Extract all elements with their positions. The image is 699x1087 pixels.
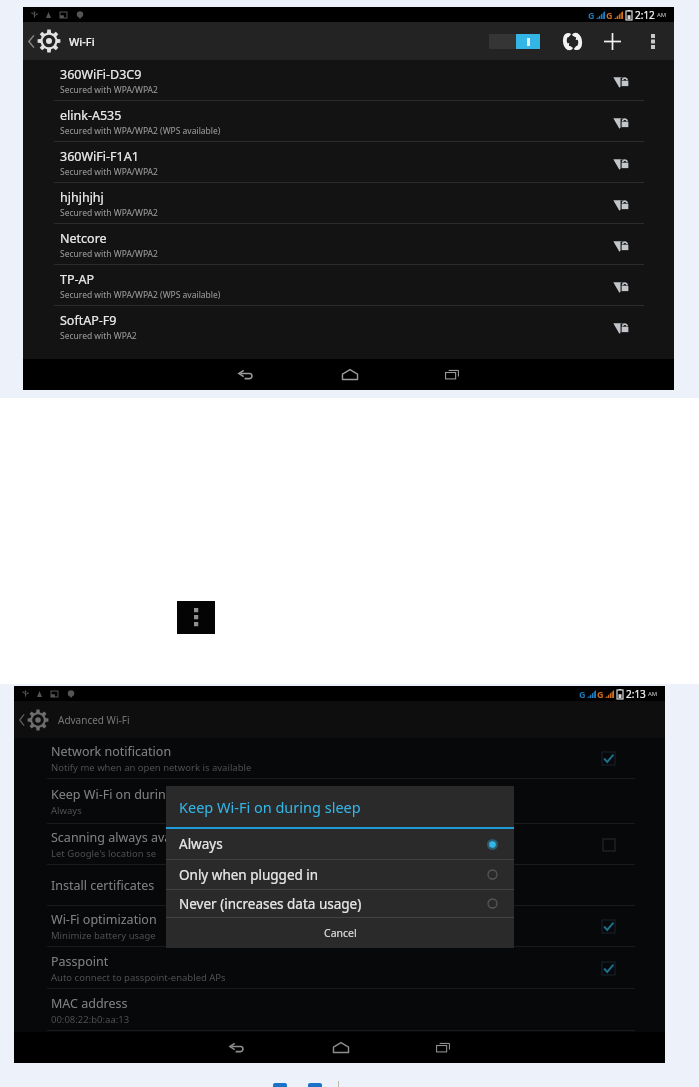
staticText: Passpoint xyxy=(51,953,109,970)
button[interactable]: Wi-Fi optimization xyxy=(14,906,665,947)
button[interactable]: Add network xyxy=(598,22,626,60)
staticText: AM xyxy=(657,11,667,19)
button[interactable]: Only when plugged in xyxy=(166,860,514,889)
staticText: Never (increases data usage) xyxy=(179,895,362,913)
staticText: Advanced Wi-Fi xyxy=(58,713,130,727)
staticText: Scanning always available xyxy=(51,829,203,846)
staticText: G xyxy=(579,688,586,700)
staticText: Wi-Fi optimization xyxy=(51,911,157,928)
staticText: G xyxy=(597,688,604,700)
button[interactable]: Home xyxy=(315,1032,367,1063)
staticText: 00:08:22:b0:aa:13 xyxy=(51,1013,130,1026)
button[interactable]: Scan xyxy=(558,22,586,60)
staticText: Install certificates xyxy=(51,877,155,894)
button[interactable]: MAC address xyxy=(14,989,665,1031)
button[interactable]: Share xyxy=(308,1083,322,1087)
staticText: Netcore xyxy=(60,230,107,247)
button[interactable]: Network notification xyxy=(14,738,665,779)
staticText: Only when plugged in xyxy=(179,866,319,884)
button[interactable]: Back xyxy=(210,1032,262,1063)
button[interactable]: Install certificates xyxy=(14,865,665,906)
button[interactable]: SoftAP-F9 xyxy=(23,306,674,347)
staticText: Secured with WPA2 xyxy=(60,330,137,342)
button[interactable]: Back xyxy=(219,359,271,390)
staticText: Always xyxy=(179,835,223,853)
staticText: 2:12 xyxy=(635,8,655,22)
staticText: Wi-Fi xyxy=(69,34,95,49)
staticText: G xyxy=(606,9,613,21)
button[interactable]: hjhjhjhj xyxy=(23,183,674,224)
staticText: Cancel xyxy=(324,926,357,940)
button[interactable]: Keep Wi-Fi on during sleep xyxy=(14,779,665,824)
staticText: MAC address xyxy=(51,995,128,1012)
staticText: 360WiFi-F1A1 xyxy=(60,148,139,165)
staticText: Keep Wi-Fi on during sleep xyxy=(179,797,361,817)
staticText: hjhjhjhj xyxy=(60,189,104,206)
staticText: 2:13 xyxy=(626,687,646,701)
button[interactable]: Passpoint xyxy=(14,947,665,989)
button[interactable]: Recents xyxy=(417,1032,469,1063)
button[interactable]: More options xyxy=(641,22,665,60)
staticText: Let Google's location se xyxy=(51,847,157,860)
staticText: Secured with WPA/WPA2 (WPS available) xyxy=(60,289,221,301)
staticText: Always xyxy=(51,804,82,817)
button[interactable]: Home xyxy=(324,359,376,390)
staticText: Secured with WPA/WPA2 xyxy=(60,84,158,96)
button[interactable]: Cancel xyxy=(166,918,514,948)
staticText: AM xyxy=(648,690,658,698)
staticText: Notify me when an open network is availa… xyxy=(51,761,252,774)
staticText: G xyxy=(588,9,595,21)
button[interactable]: elink-A535 xyxy=(23,101,674,142)
staticText: 360WiFi-D3C9 xyxy=(60,66,142,83)
button[interactable]: TP-AP xyxy=(23,265,674,306)
button[interactable]: Netcore xyxy=(23,224,674,265)
staticText: Minimize battery usage xyxy=(51,929,156,942)
staticText: Auto connect to passpoint-enabled APs xyxy=(51,971,226,984)
button[interactable]: Share xyxy=(273,1083,287,1087)
staticText: elink-A535 xyxy=(60,107,122,124)
staticText: Secured with WPA/WPA2 xyxy=(60,248,158,260)
button[interactable]: More options xyxy=(177,601,215,634)
staticText: TP-AP xyxy=(60,271,95,288)
button[interactable]: Recents xyxy=(426,359,478,390)
button[interactable]: Scanning always available xyxy=(14,824,665,865)
staticText: Secured with WPA/WPA2 xyxy=(60,166,158,178)
button[interactable]: 360WiFi-D3C9 xyxy=(23,60,674,101)
button[interactable]: Navigate up xyxy=(23,22,65,60)
staticText: Secured with WPA/WPA2 xyxy=(60,207,158,219)
staticText: Keep Wi-Fi on during sleep xyxy=(51,786,208,803)
button[interactable]: Never (increases data usage) xyxy=(166,890,514,917)
staticText: SoftAP-F9 xyxy=(60,312,117,329)
staticText: Network notification xyxy=(51,743,172,760)
button[interactable]: Navigate up xyxy=(14,701,53,738)
button[interactable]: Wi-Fi toggle xyxy=(485,27,544,56)
button[interactable]: Always xyxy=(166,829,514,859)
button[interactable]: 360WiFi-F1A1 xyxy=(23,142,674,183)
staticText: Secured with WPA/WPA2 (WPS available) xyxy=(60,125,221,137)
